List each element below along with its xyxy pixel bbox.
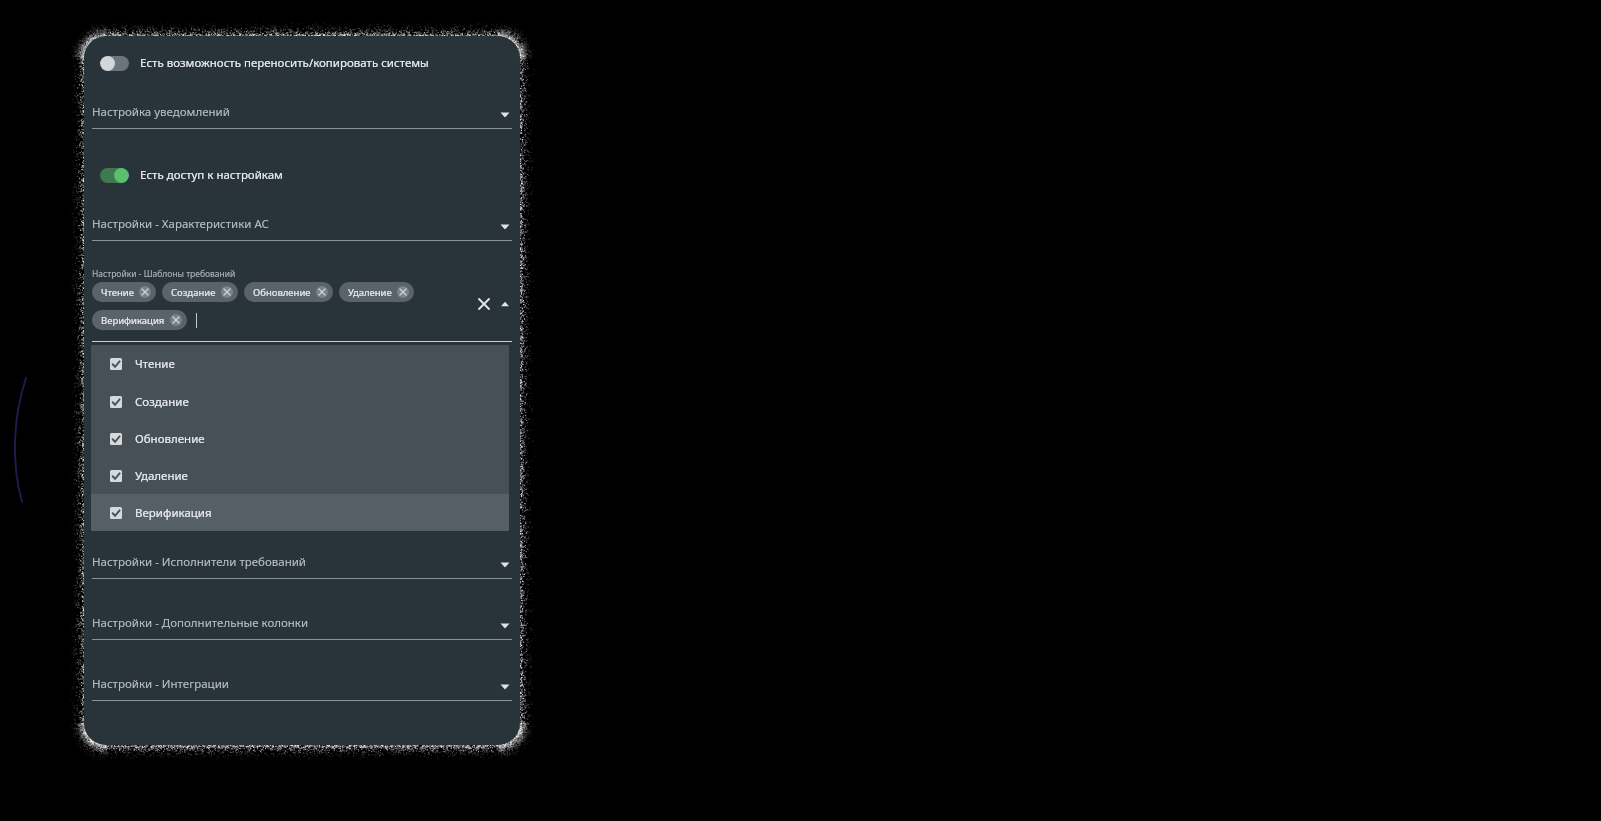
staticText: Настройки - Шаблоны требований [92, 268, 236, 280]
button[interactable]: Настройки - Характеристики АС [92, 215, 512, 241]
button[interactable]: Чтение [91, 345, 509, 383]
button[interactable]: Удаление [339, 282, 414, 302]
button[interactable]: Очистить выбор [475, 295, 493, 313]
staticText: Есть возможность переносить/копировать с… [140, 55, 429, 71]
staticText: Удаление [135, 468, 188, 484]
button[interactable]: Настройка уведомлений [92, 103, 512, 129]
button[interactable]: Удалить Верификация [170, 314, 182, 326]
staticText: Удаление [348, 286, 392, 299]
button[interactable]: Есть доступ к настройкам [100, 160, 283, 190]
staticText: Настройки - Интеграции [92, 676, 229, 692]
button[interactable]: Удалить Удаление [397, 286, 409, 298]
button[interactable]: Создание [162, 282, 238, 302]
button[interactable]: Верификация [91, 494, 509, 531]
button[interactable]: Обновление [91, 420, 509, 457]
staticText: Чтение [135, 356, 175, 372]
staticText: Настройки - Характеристики АС [92, 216, 269, 232]
button[interactable]: Удалить Чтение [139, 286, 151, 298]
button[interactable]: Есть возможность переносить/копировать с… [100, 48, 429, 78]
button[interactable]: Настройки - Дополнительные колонки [92, 614, 512, 640]
button[interactable]: Обновление [244, 282, 333, 302]
button[interactable]: Чтение [92, 282, 156, 302]
button[interactable]: Свернуть список [496, 295, 514, 313]
staticText: Обновление [135, 431, 205, 447]
staticText: Настройки - Дополнительные колонки [92, 615, 309, 631]
button[interactable]: Настройки - Исполнители требований [92, 553, 512, 579]
button[interactable]: Удалить Создание [221, 286, 233, 298]
staticText: Создание [135, 394, 189, 410]
staticText: Верификация [135, 505, 212, 521]
staticText: Есть доступ к настройкам [140, 167, 283, 183]
staticText: Чтение [101, 286, 134, 299]
button[interactable]: Верификация [92, 310, 187, 330]
button[interactable]: Удалить Обновление [316, 286, 328, 298]
button[interactable]: Удаление [91, 457, 509, 494]
staticText: Создание [171, 286, 216, 299]
staticText: Обновление [253, 286, 311, 299]
button[interactable]: Создание [91, 383, 509, 420]
staticText: Настройки - Исполнители требований [92, 554, 307, 570]
button[interactable]: Настройки - Интеграции [92, 675, 512, 701]
staticText: Настройка уведомлений [92, 104, 230, 120]
staticText: Верификация [101, 314, 165, 327]
